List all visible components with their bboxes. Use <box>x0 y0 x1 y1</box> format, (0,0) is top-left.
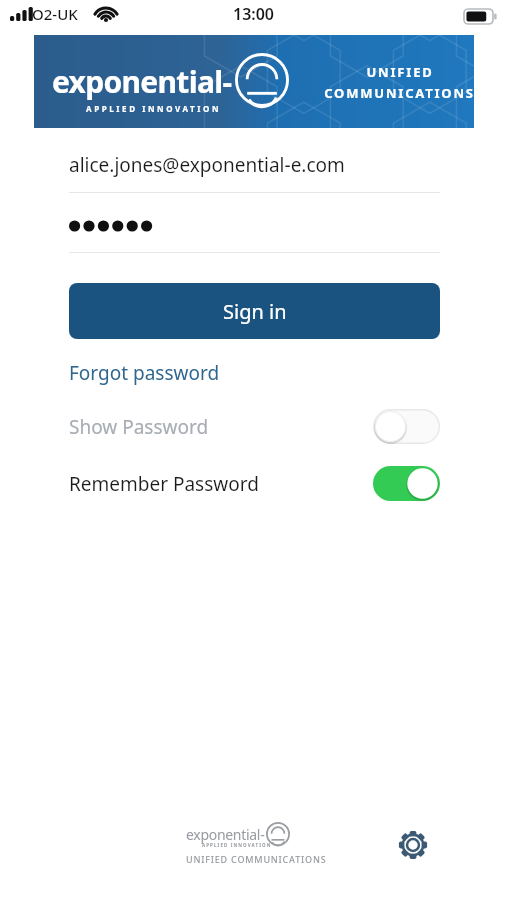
staticText: Sign in <box>223 298 287 325</box>
staticText: APPLIED INNOVATION <box>86 103 222 114</box>
other: On <box>373 466 440 501</box>
staticText: O2-UK <box>32 4 78 24</box>
button[interactable]: Settings <box>391 823 435 867</box>
button[interactable]: Forgot password <box>69 358 220 388</box>
staticText: Forgot password <box>69 360 220 386</box>
staticText: exponential- <box>52 61 232 102</box>
staticText: Show Password <box>69 414 209 440</box>
other: Off <box>373 409 440 444</box>
staticText: COMMUNICATIONS <box>324 84 475 102</box>
staticText: Remember Password <box>69 471 259 497</box>
staticText: exponential- <box>186 825 265 844</box>
staticText: APPLIED INNOVATION <box>202 842 272 848</box>
button[interactable]: Sign in <box>69 283 440 339</box>
staticText: 13:00 <box>233 3 275 25</box>
staticText: alice.jones@exponential-e.com <box>69 152 345 178</box>
staticText: UNIFIED <box>366 63 434 81</box>
button[interactable]: Remember Password <box>69 466 440 501</box>
button[interactable]: Show Password <box>69 409 440 444</box>
staticText: UNIFIED COMMUNICATIONS <box>186 853 327 865</box>
